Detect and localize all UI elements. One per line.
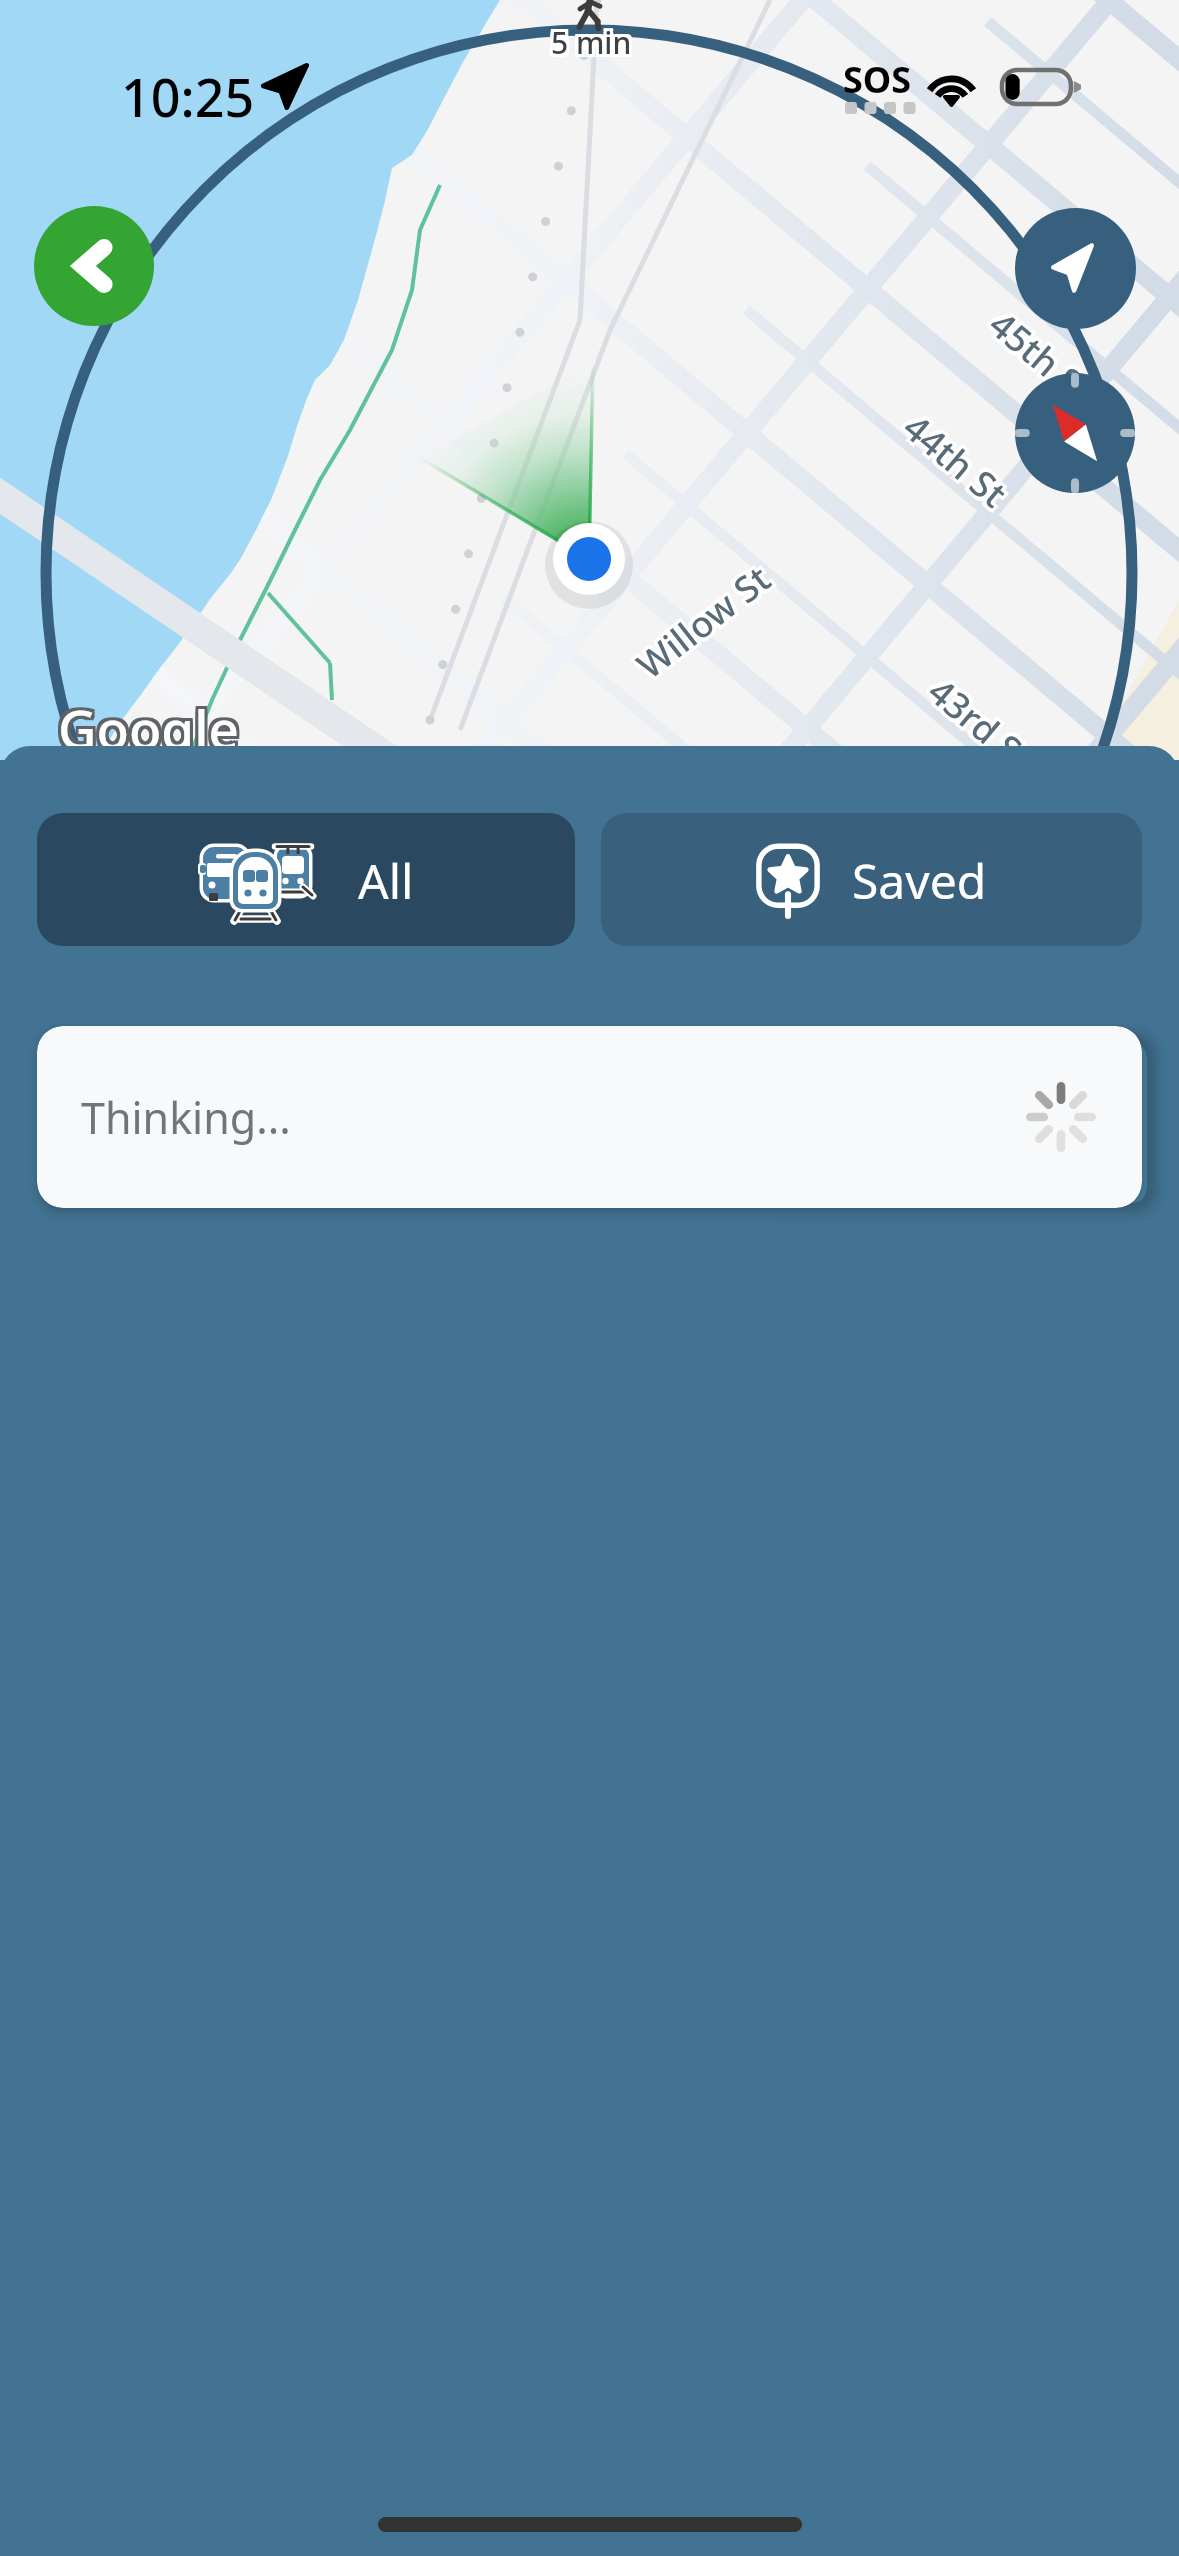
staticText: 44th St [895, 400, 1019, 516]
staticText: 5 min [554, 22, 635, 63]
staticText: 44th St [893, 399, 1017, 514]
staticText: 43rd St [916, 669, 1041, 784]
staticText: 5 min [554, 25, 635, 66]
staticText: 45th St [979, 296, 1103, 411]
staticText: 43rd St [919, 671, 1043, 786]
staticText: Willow St [624, 556, 778, 691]
staticText: 45th St [981, 297, 1105, 413]
staticText: Willow St [631, 554, 785, 690]
staticText: Google [61, 689, 242, 761]
staticText: Willow St [626, 558, 780, 693]
staticText: SOS [843, 55, 912, 104]
staticText: Willow St [622, 553, 776, 689]
staticText: 5 min [548, 25, 629, 66]
staticText: 43rd St [918, 667, 1043, 782]
staticText: Google [55, 692, 236, 764]
staticText: Google [58, 689, 239, 761]
button[interactable]: Saved [601, 813, 1142, 946]
staticText: 43rd St [921, 669, 1045, 784]
staticText: 45th St [980, 304, 1104, 419]
staticText: 43rd St [918, 663, 1042, 778]
staticText: Willow St [627, 550, 781, 685]
staticText: 43rd St [920, 664, 1044, 780]
staticText: 44th St [891, 401, 1015, 516]
staticText: Google [61, 695, 242, 767]
button[interactable]: Thinking... [37, 1026, 1142, 1208]
staticText: 44th St [898, 402, 1022, 518]
staticText: 43rd St [916, 665, 1040, 780]
staticText: Google [55, 695, 236, 767]
staticText: 44th St [896, 405, 1020, 520]
staticText: 44th St [893, 403, 1018, 518]
button[interactable]: Back [34, 206, 154, 326]
staticText: 5 min [548, 22, 629, 63]
button[interactable]: All [37, 813, 575, 946]
staticText: 5 min [548, 19, 629, 60]
staticText: 5 min [554, 19, 635, 60]
staticText: Google [55, 689, 236, 761]
staticText: 45th St [977, 302, 1102, 417]
staticText: 10:25 [121, 61, 255, 132]
staticText: 44th St [889, 403, 1013, 518]
staticText: Google [61, 692, 242, 764]
staticText: 44th St [894, 407, 1018, 522]
staticText: Willow St [629, 552, 783, 687]
staticText: Willow St [625, 551, 779, 687]
staticText: 45th St [979, 300, 1104, 415]
staticText: 5 min [551, 19, 632, 60]
staticText: 43rd St [914, 667, 1038, 782]
staticText: 45th St [977, 298, 1101, 413]
staticText: All [358, 848, 414, 913]
staticText: Google [58, 695, 239, 767]
staticText: 5 min [551, 25, 632, 66]
staticText: 44th St [891, 405, 1016, 520]
staticText: 45th St [984, 299, 1108, 415]
staticText: Willow St [627, 554, 780, 689]
staticText: Thinking... [81, 1088, 291, 1147]
staticText: 5 min [551, 22, 632, 63]
button[interactable]: Navigate [1015, 208, 1136, 329]
staticText: Saved [852, 848, 987, 913]
staticText: 43rd St [923, 666, 1047, 782]
staticText: 45th St [982, 302, 1106, 417]
staticText: Willow St [628, 556, 782, 691]
staticText: 45th St [975, 300, 1099, 415]
staticText: Google [58, 692, 239, 764]
button[interactable]: Compass [1015, 373, 1135, 493]
